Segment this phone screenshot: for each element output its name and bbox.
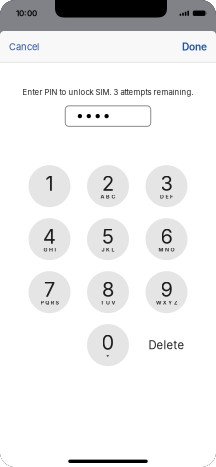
button[interactable]: Done xyxy=(174,31,216,62)
staticText: 5 xyxy=(102,224,114,249)
button[interactable]: 9 xyxy=(145,271,187,313)
button[interactable]: 4 xyxy=(28,218,70,260)
button[interactable]: 3 xyxy=(145,165,187,207)
staticText: Enter PIN to unlock SIM. 3 attempts rema… xyxy=(22,87,193,97)
staticText: 1 xyxy=(45,171,53,196)
staticText: 0 xyxy=(101,330,114,355)
staticText: TUV xyxy=(100,299,116,306)
staticText: Done xyxy=(182,41,207,53)
staticText: MNO xyxy=(158,246,175,253)
button[interactable]: Delete xyxy=(145,324,187,366)
staticText: GHI xyxy=(43,246,56,253)
staticText: 4 xyxy=(43,224,56,249)
staticText: 9 xyxy=(160,277,172,302)
button[interactable]: Cancel xyxy=(0,31,47,62)
button[interactable]: 6 xyxy=(145,218,187,260)
staticText: 10:00 xyxy=(16,8,37,18)
staticText: 3 xyxy=(160,171,172,196)
staticText: WXYZ xyxy=(156,299,177,306)
staticText: ABC xyxy=(100,193,116,200)
button[interactable]: 1 xyxy=(28,165,70,207)
button[interactable]: 7 xyxy=(28,271,70,313)
staticText: Cancel xyxy=(9,41,39,52)
staticText: Delete xyxy=(148,338,184,352)
staticText: 2 xyxy=(102,171,114,196)
staticText: DEF xyxy=(160,193,173,200)
staticText: 8 xyxy=(102,277,114,302)
button[interactable]: 2 xyxy=(87,165,129,207)
staticText: PQRS xyxy=(41,299,58,306)
button[interactable]: 5 xyxy=(87,218,129,260)
staticText: 6 xyxy=(160,224,172,249)
button[interactable]: 0 xyxy=(87,324,129,366)
staticText: JKL xyxy=(101,246,115,253)
button[interactable]: 8 xyxy=(87,271,129,313)
staticText: 7 xyxy=(44,277,55,302)
staticText: + xyxy=(106,352,110,359)
